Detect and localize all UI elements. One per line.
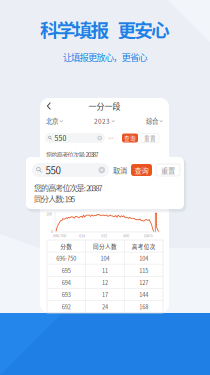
staticText: 17 (102, 291, 108, 299)
staticText: 104 (139, 254, 148, 262)
staticText: 692 (62, 303, 71, 311)
staticText: 532 (101, 233, 107, 238)
staticText: 550 (45, 163, 60, 177)
button[interactable]: 北京 (46, 116, 63, 126)
staticText: 取消 (113, 165, 127, 175)
staticText: 一分一段 (88, 100, 120, 112)
staticText: 重置 (144, 134, 156, 142)
staticText: 696-750 (56, 254, 76, 262)
staticText: 100 (46, 211, 52, 217)
staticText: 100-5 (143, 233, 152, 238)
staticText: 693 (62, 291, 71, 299)
staticText: 2023 (94, 116, 110, 126)
staticText: 696-750 (53, 233, 66, 238)
staticText: 695 (62, 266, 71, 274)
staticText: 12 (102, 278, 108, 287)
staticText: 查询 (134, 165, 148, 175)
staticText: 0 (51, 228, 53, 234)
staticText: 144 (139, 291, 148, 299)
staticText: 614 (79, 233, 85, 238)
staticText: 您的高考位次是: 20387 (34, 182, 102, 194)
staticText: 北京 (46, 116, 58, 126)
staticText: 127 (139, 278, 148, 287)
button[interactable]: 取消 (108, 133, 119, 143)
staticText: 450 (123, 233, 129, 238)
button[interactable]: Back (45, 101, 53, 111)
staticText: 高考位次 (132, 242, 156, 250)
button[interactable]: 重置 (156, 164, 180, 176)
button[interactable]: 查询 (122, 133, 138, 142)
staticText: 综合 (146, 116, 158, 126)
button[interactable]: 2023 (94, 116, 115, 126)
staticText: 550 (55, 133, 67, 143)
button[interactable]: 综合 (146, 116, 163, 126)
button[interactable]: 取消 (113, 163, 127, 177)
staticText: 104 (100, 254, 109, 262)
staticText: 分数 (60, 242, 72, 250)
button[interactable]: 重置 (141, 133, 159, 142)
staticText: 重置 (161, 165, 175, 175)
button[interactable]: 查询 (131, 164, 152, 176)
staticText: 您的高考位次是: 20387 (46, 150, 98, 159)
staticText: 取消 (108, 134, 119, 142)
staticText: 同分人数: 195 (34, 193, 75, 205)
staticText: 查询 (124, 134, 136, 142)
staticText: 115 (139, 266, 148, 274)
staticText: 同分人数 (93, 242, 117, 250)
staticText: 科学填报 (40, 15, 109, 42)
staticText: 168 (139, 303, 148, 311)
staticText: 让填报更放心，更省心 (63, 50, 147, 64)
staticText: 更安心 (117, 15, 170, 42)
staticText: 11 (102, 266, 108, 274)
staticText: 694 (62, 278, 71, 287)
staticText: 24 (102, 303, 108, 311)
